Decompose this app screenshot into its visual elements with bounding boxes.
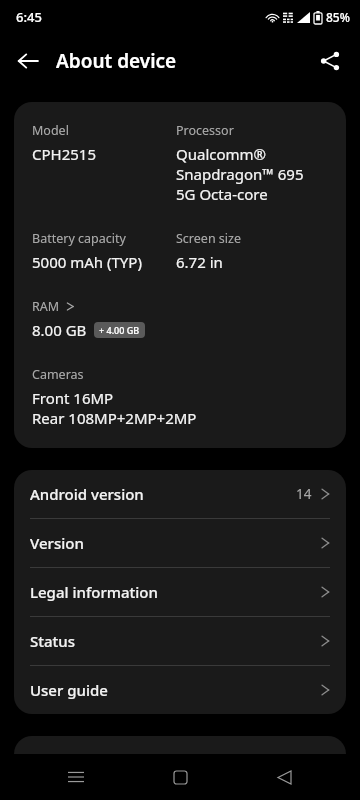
staticText: 5G Octa-core — [176, 184, 268, 204]
staticText: 6:45 — [16, 8, 42, 26]
staticText: 6.72 in — [176, 252, 223, 272]
button[interactable]: Home — [152, 754, 208, 800]
staticText: Model — [32, 122, 69, 139]
staticText: Legal information — [30, 582, 321, 602]
staticText: Processor — [176, 122, 234, 139]
button[interactable]: Recents — [48, 754, 104, 800]
button[interactable]: Back — [256, 754, 312, 800]
staticText: 14 — [296, 485, 312, 503]
button[interactable]: Back — [6, 39, 50, 83]
staticText: Front 16MP — [32, 388, 114, 408]
staticText: User guide — [30, 680, 321, 700]
staticText: 8.00 GB — [32, 320, 87, 340]
button[interactable]: Android version — [14, 470, 346, 518]
staticText: Status — [30, 631, 321, 651]
staticText: Screen size — [176, 230, 241, 247]
button[interactable] — [14, 736, 346, 776]
staticText: About device — [56, 48, 177, 74]
staticText: Cameras — [32, 366, 84, 383]
staticText: Rear 108MP+2MP+2MP — [32, 408, 197, 428]
staticText: RAM — [32, 298, 60, 315]
button[interactable]: RAM — [32, 298, 75, 315]
staticText: Battery capacity — [32, 230, 126, 247]
button[interactable]: Share — [308, 39, 352, 83]
staticText: Android version — [30, 484, 296, 504]
staticText: Snapdragon™ 695 — [176, 164, 304, 184]
button[interactable]: Legal information — [14, 568, 346, 616]
button[interactable]: User guide — [14, 666, 346, 714]
staticText: CPH2515 — [32, 144, 96, 164]
staticText: 85% — [326, 9, 350, 25]
staticText: Version — [30, 533, 321, 553]
staticText: + 4.00 GB — [99, 324, 140, 336]
button[interactable]: Status — [14, 617, 346, 665]
button[interactable]: Version — [14, 519, 346, 567]
staticText: Qualcomm® — [176, 144, 267, 164]
staticText: 5000 mAh (TYP) — [32, 252, 142, 272]
